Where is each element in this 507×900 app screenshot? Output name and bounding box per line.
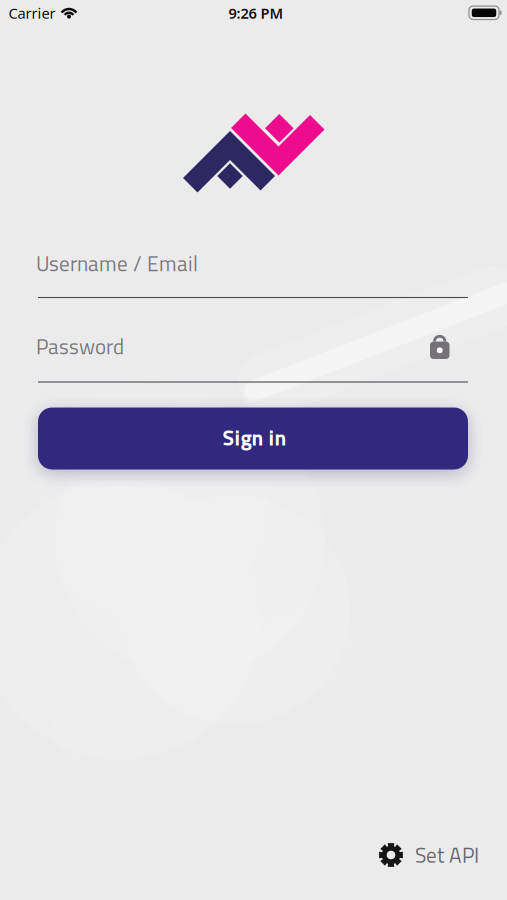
staticText: Carrier	[8, 3, 55, 23]
staticText: Sign in	[222, 421, 286, 454]
staticText: Set API	[415, 839, 479, 871]
staticText: 9:26 PM	[228, 3, 283, 23]
staticText: Username / Email	[36, 247, 198, 279]
staticText: Password	[36, 330, 124, 362]
